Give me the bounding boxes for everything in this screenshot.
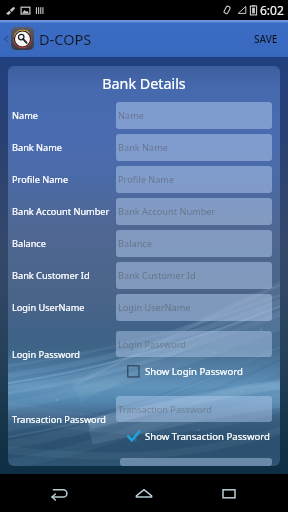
staticText: Show Transaction Password [145,430,270,443]
staticText: Login UserName [118,301,191,314]
staticText: D-COPS [39,29,92,49]
staticText: SAVE [254,32,278,46]
button[interactable]: Recent apps [203,474,255,512]
button[interactable]: Navigate up [0,27,96,50]
staticText: Login Password [118,338,187,351]
staticText: 6:02 [260,2,284,18]
staticText: Bank Details [8,74,280,93]
other: Navigate up [2,35,10,43]
staticText: Transaction Password [12,413,106,426]
staticText: Show Login Password [145,365,243,378]
staticText: Profile Name [12,173,69,186]
staticText: Bank Customer Id [118,269,196,282]
staticText: Profile Name [118,173,175,186]
button[interactable]: SAVE [242,21,288,57]
staticText: Transaction Password [118,403,212,416]
staticText: Name [12,109,38,122]
button[interactable]: Back [33,474,85,512]
staticText: Bank Account Number [118,205,216,218]
button[interactable]: Show Login Password [127,365,243,378]
staticText: Name [118,109,144,122]
button[interactable]: Home [118,474,170,512]
button[interactable]: Show Transaction Password [127,430,270,443]
staticText: Login UserName [12,301,85,314]
staticText: Bank Account Number [12,205,110,218]
staticText: Balance [12,237,46,250]
staticText: Balance [118,237,152,250]
staticText: Bank Name [12,141,63,154]
staticText: Login Password [12,348,81,361]
staticText: Bank Name [118,141,169,154]
staticText: Bank Customer Id [12,269,90,282]
